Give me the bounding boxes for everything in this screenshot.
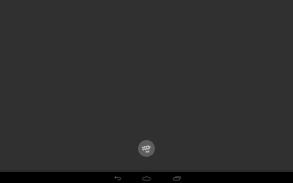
button[interactable]: Home — [142, 172, 151, 183]
button[interactable]: Loading — [138, 140, 155, 157]
button[interactable]: Back — [113, 172, 122, 183]
button[interactable]: Recents — [172, 172, 181, 183]
